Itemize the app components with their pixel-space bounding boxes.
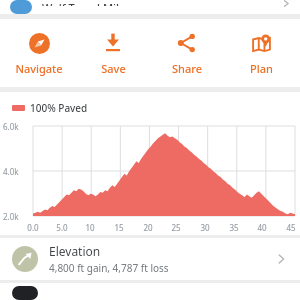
- staticText: 40: [257, 222, 267, 233]
- staticText: Plan: [250, 61, 273, 76]
- staticText: 15: [114, 222, 124, 233]
- button[interactable]: Wolf Travel Miles: [0, 0, 300, 14]
- staticText: 45: [286, 222, 296, 233]
- other: Open elevation details: [274, 252, 288, 266]
- button[interactable]: Share: [152, 19, 222, 87]
- button[interactable]: Plan: [226, 19, 296, 87]
- staticText: Navigate: [15, 61, 63, 76]
- staticText: 4.0k: [3, 166, 19, 175]
- staticText: 35: [229, 222, 239, 233]
- button[interactable]: [0, 283, 300, 300]
- staticText: Save: [101, 61, 126, 76]
- staticText: 10: [85, 222, 95, 233]
- staticText: 100% Paved: [30, 101, 88, 115]
- button[interactable]: Save: [78, 19, 148, 87]
- button[interactable]: Navigate: [4, 19, 74, 87]
- staticText: Share: [172, 61, 202, 76]
- staticText: Elevation: [49, 243, 101, 259]
- staticText: 25: [171, 222, 181, 233]
- staticText: 6.0k: [3, 121, 19, 130]
- staticText: 4,800 ft gain, 4,787 ft loss: [49, 261, 169, 275]
- staticText: 5.0: [56, 222, 68, 233]
- staticText: 30: [200, 222, 210, 233]
- staticText: 2.0k: [3, 211, 19, 220]
- staticText: 0.0: [27, 222, 39, 233]
- button[interactable]: Elevation: [0, 238, 300, 280]
- staticText: 20: [143, 222, 153, 233]
- staticText: Wolf Travel Miles: [42, 0, 131, 6]
